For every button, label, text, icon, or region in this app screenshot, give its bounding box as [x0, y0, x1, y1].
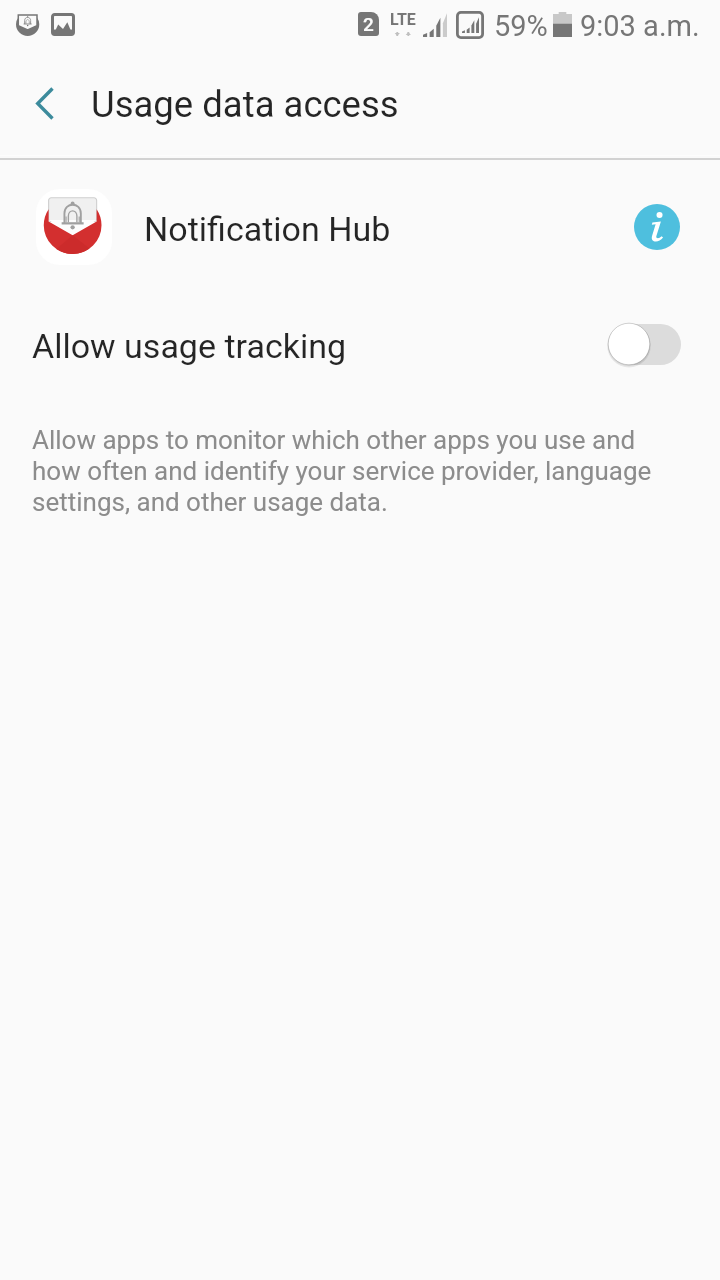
- staticText: Allow usage tracking: [32, 326, 347, 366]
- staticText: Allow apps to monitor which other apps y…: [32, 425, 666, 518]
- staticText: 9:03 a.m.: [580, 9, 700, 43]
- button[interactable]: Allow usage tracking toggle, off: [605, 320, 681, 368]
- button[interactable]: Navigate up: [8, 59, 80, 131]
- button[interactable]: Allow usage tracking: [0, 294, 720, 394]
- button[interactable]: App info: [634, 204, 680, 250]
- button[interactable]: Notification Hub: [0, 160, 720, 294]
- staticText: Usage data access: [91, 83, 399, 126]
- staticText: 2: [363, 13, 374, 35]
- staticText: LTE: [390, 10, 416, 29]
- staticText: Notification Hub: [144, 209, 391, 249]
- staticText: 59%: [494, 9, 548, 43]
